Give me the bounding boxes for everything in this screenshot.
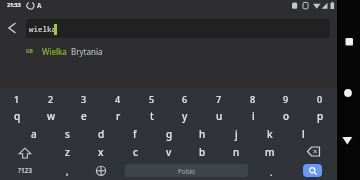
- staticText: 1: [14, 93, 20, 105]
- staticText: 6: [182, 93, 188, 105]
- staticText: v: [166, 145, 172, 159]
- button[interactable]: 4: [101, 91, 135, 107]
- button[interactable]: 0: [303, 91, 337, 107]
- button[interactable]: w: [34, 108, 68, 124]
- button[interactable]: s: [50, 126, 84, 142]
- staticText: c: [133, 145, 138, 159]
- staticText: 5: [149, 93, 155, 105]
- staticText: f: [133, 127, 137, 141]
- button[interactable]: x: [84, 144, 118, 160]
- button[interactable]: j: [219, 126, 253, 142]
- staticText: .: [270, 166, 273, 178]
- staticText: e: [81, 109, 87, 123]
- button[interactable]: o: [269, 108, 303, 124]
- staticText: Wielka: [42, 46, 67, 57]
- staticText: j: [235, 127, 238, 141]
- button[interactable]: g: [152, 126, 186, 142]
- button[interactable]: Polski: [125, 164, 248, 177]
- staticText: 0: [317, 93, 323, 105]
- button[interactable]: q: [0, 108, 34, 124]
- staticText: a: [31, 127, 37, 141]
- button[interactable]: 5: [135, 91, 169, 107]
- staticText: 21:33: [7, 1, 21, 9]
- staticText: GB: [26, 48, 33, 55]
- button[interactable]: c: [118, 144, 152, 160]
- staticText: ,: [66, 165, 69, 177]
- button[interactable]: 3: [67, 91, 101, 107]
- button[interactable]: [94, 164, 108, 178]
- staticText: Polski: [178, 167, 195, 175]
- button[interactable]: 6: [168, 91, 202, 107]
- staticText: s: [65, 127, 70, 141]
- button[interactable]: ,: [50, 163, 84, 179]
- staticText: x: [98, 145, 104, 159]
- staticText: Brytania: [71, 46, 103, 57]
- staticText: q: [14, 109, 21, 123]
- button[interactable]: k: [253, 126, 287, 142]
- staticText: k: [267, 127, 273, 141]
- button[interactable]: t: [135, 108, 169, 124]
- button[interactable]: m: [253, 144, 287, 160]
- staticText: d: [98, 127, 105, 141]
- button[interactable]: e: [67, 108, 101, 124]
- button[interactable]: 9: [269, 91, 303, 107]
- button[interactable]: 2: [34, 91, 68, 107]
- staticText: p: [317, 109, 324, 123]
- staticText: g: [166, 127, 173, 141]
- button[interactable]: ?123: [8, 162, 42, 178]
- staticText: m: [265, 145, 275, 159]
- staticText: 8: [250, 93, 256, 105]
- button[interactable]: [303, 145, 325, 158]
- staticText: b: [199, 145, 206, 159]
- button[interactable]: u: [202, 108, 236, 124]
- button[interactable]: [337, 30, 360, 54]
- staticText: 3: [81, 93, 87, 105]
- staticText: o: [283, 109, 290, 123]
- staticText: h: [199, 127, 206, 141]
- staticText: y: [182, 109, 188, 123]
- button[interactable]: [7, 22, 17, 34]
- button[interactable]: [337, 81, 360, 105]
- staticText: u: [216, 109, 223, 123]
- button[interactable]: 1: [0, 91, 34, 107]
- button[interactable]: a: [17, 126, 51, 142]
- button[interactable]: l: [286, 126, 320, 142]
- button[interactable]: z: [50, 144, 84, 160]
- button[interactable]: p: [303, 108, 337, 124]
- staticText: l: [302, 127, 305, 141]
- button[interactable]: r: [101, 108, 135, 124]
- button[interactable]: [303, 164, 322, 177]
- staticText: z: [65, 145, 70, 159]
- button[interactable]: wielka: [26, 19, 330, 38]
- button[interactable]: b: [185, 144, 219, 160]
- button[interactable]: 8: [236, 91, 270, 107]
- button[interactable]: v: [152, 144, 186, 160]
- button[interactable]: f: [118, 126, 152, 142]
- button[interactable]: 7: [202, 91, 236, 107]
- staticText: 2: [48, 93, 54, 105]
- staticText: 9: [283, 93, 289, 105]
- staticText: t: [150, 109, 154, 123]
- staticText: w: [47, 109, 56, 123]
- button[interactable]: [14, 147, 36, 160]
- staticText: r: [116, 109, 121, 123]
- button[interactable]: h: [185, 126, 219, 142]
- staticText: n: [233, 145, 240, 159]
- button[interactable]: [337, 129, 360, 153]
- staticText: i: [252, 109, 255, 123]
- button[interactable]: y: [168, 108, 202, 124]
- staticText: 7: [216, 93, 222, 105]
- button[interactable]: d: [84, 126, 118, 142]
- button[interactable]: GB: [0, 44, 337, 61]
- button[interactable]: n: [219, 144, 253, 160]
- staticText: wielka: [29, 24, 56, 34]
- staticText: A: [37, 1, 42, 10]
- button[interactable]: .: [254, 164, 288, 180]
- staticText: ?123: [18, 166, 33, 175]
- button[interactable]: i: [236, 108, 270, 124]
- staticText: 4: [115, 93, 121, 105]
